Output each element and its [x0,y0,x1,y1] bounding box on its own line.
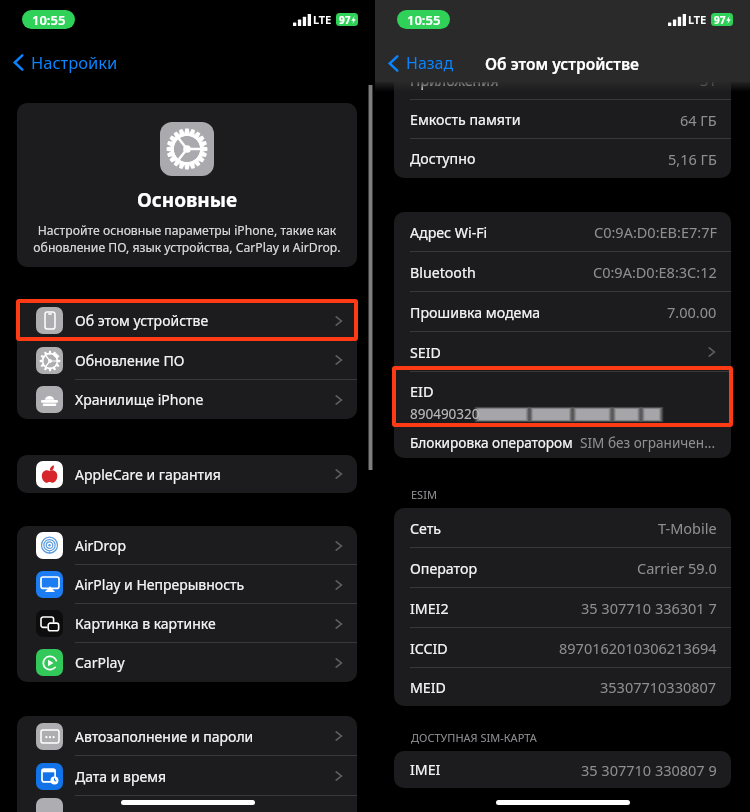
staticText: LTE [313,12,332,27]
staticText: Оператор [410,559,478,578]
button[interactable]: Bluetooth [394,252,731,292]
staticText: 10:55 [407,11,441,29]
staticText: ДОСТУПНАЯ SIM-КАРТА [411,730,537,745]
staticText: Приложения [410,71,499,90]
staticText: 7.00.00 [667,302,717,322]
button[interactable]: Адрес Wi-Fi [394,212,731,252]
button[interactable]: MEID [394,668,731,706]
button[interactable]: AirDrop [17,526,357,565]
button[interactable]: Емкость памяти [394,100,731,139]
button[interactable]: Картинка в картинке [17,604,357,643]
staticText: Адрес Wi-Fi [410,223,488,242]
staticText: Назад [406,52,454,74]
staticText: AppleCare и гарантия [75,465,334,484]
staticText: CarPlay [75,653,334,672]
staticText: IMEI2 [410,599,449,618]
staticText: EID [410,381,434,401]
staticText: AirDrop [75,536,334,555]
staticText: LTE [688,12,707,27]
button[interactable]: Блокировка оператором [410,427,716,458]
staticText: ESIM [411,487,437,502]
staticText: Дата и время [75,767,334,786]
button[interactable]: ICCID [394,628,731,668]
staticText: C0:9A:D0:EB:E7:7F [594,222,717,242]
staticText: 35307710330807 [600,677,717,697]
staticText: 8970162010306213694 [559,638,717,658]
staticText: IMEI [410,760,441,779]
staticText: Емкость памяти [410,110,521,129]
button[interactable]: Об этом устройстве [17,301,357,340]
button[interactable]: Приложения [394,60,731,100]
button[interactable]: AppleCare и гарантия [17,455,357,493]
staticText: Основные [137,187,238,213]
staticText: Обновление ПО [75,351,334,370]
staticText: AirPlay и Непрерывность [75,575,334,594]
staticText: 97 [714,13,726,26]
staticText: SEID [410,343,441,362]
button[interactable]: AirPlay и Непрерывность [17,565,357,604]
button[interactable]: CarPlay [17,643,357,682]
staticText: 35 307710 330807 9 [581,760,717,780]
staticText: Сеть [410,519,442,538]
button[interactable]: Прошивка модема [394,292,731,332]
staticText: T-Mobile [658,518,717,538]
button[interactable]: Обновление ПО [17,340,357,380]
staticText: Об этом устройстве [485,53,640,74]
staticText: Об этом устройстве [75,311,334,330]
button[interactable]: Назад [388,52,454,74]
staticText: Настройки [31,51,118,73]
button[interactable]: Автозаполнение и пароли [17,716,357,756]
staticText: Картинка в картинке [75,614,334,633]
staticText: Блокировка оператором [410,433,573,452]
staticText: 10:55 [32,11,66,29]
staticText: Bluetooth [410,263,476,282]
staticText: Carrier 59.0 [637,558,717,578]
staticText: 890490320 [410,405,480,423]
staticText: 35 307710 336301 7 [581,598,717,618]
staticText: 64 ГБ [680,110,717,130]
staticText: ICCID [410,639,448,658]
button[interactable]: Хранилище iPhone [17,380,357,419]
button[interactable]: Доступно [394,139,731,178]
button[interactable]: Дата и время [17,756,357,796]
button[interactable]: IMEI2 [394,588,731,628]
button[interactable]: Клавиатура [36,796,357,812]
staticText: 31 [700,70,717,90]
button[interactable]: Настройки [13,51,118,73]
staticText: Автозаполнение и пароли [75,727,334,746]
staticText: MEID [410,678,446,697]
button[interactable]: Оператор [394,548,731,588]
staticText: Прошивка модема [410,303,541,322]
staticText: Хранилище iPhone [75,390,334,409]
button[interactable]: EID [394,372,731,427]
button[interactable]: Сеть [394,508,731,548]
staticText: 5,16 ГБ [668,149,717,169]
button[interactable]: SEID [394,332,731,372]
staticText: SIM без ограничен... [580,433,716,452]
staticText: 97 [339,13,351,26]
staticText: C0:9A:D0:E8:3C:12 [593,262,717,282]
button[interactable]: IMEI [394,751,731,788]
staticText: Настройте основные параметры iPhone, так… [23,222,351,256]
staticText: Доступно [410,149,476,168]
